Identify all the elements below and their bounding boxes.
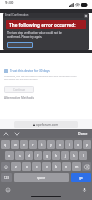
button[interactable]: f bbox=[34, 151, 42, 160]
button[interactable]: Go bbox=[71, 173, 91, 182]
staticText: h bbox=[55, 153, 58, 158]
button[interactable]: opeforum.com bbox=[14, 121, 78, 128]
staticText: d bbox=[28, 153, 31, 158]
staticText: q bbox=[4, 142, 7, 147]
staticText: opeforum.com bbox=[36, 123, 59, 127]
button[interactable]: s bbox=[15, 151, 24, 160]
staticText: p bbox=[86, 142, 89, 147]
staticText: v bbox=[46, 164, 48, 169]
button[interactable]: a bbox=[5, 151, 14, 160]
button[interactable]: w bbox=[11, 140, 19, 149]
button[interactable]: n bbox=[62, 162, 71, 171]
button[interactable]: t bbox=[38, 140, 46, 149]
staticText: Done bbox=[78, 131, 88, 136]
staticText: u bbox=[59, 142, 62, 147]
staticText: r bbox=[32, 142, 34, 147]
staticText: space bbox=[37, 176, 46, 180]
staticText: m bbox=[75, 164, 79, 169]
button[interactable]: Backspace bbox=[82, 162, 91, 171]
button[interactable]: l bbox=[79, 151, 87, 160]
staticText: l bbox=[83, 153, 84, 158]
button[interactable]: u bbox=[56, 140, 64, 149]
staticText: a bbox=[8, 153, 11, 158]
button[interactable]: Next field bbox=[14, 131, 20, 137]
staticText: b bbox=[55, 164, 58, 169]
button[interactable]: g bbox=[43, 151, 51, 160]
button[interactable]: Continue bbox=[4, 86, 34, 93]
button[interactable]: Previous field bbox=[3, 131, 9, 137]
staticText: 9:30 bbox=[5, 0, 14, 6]
button[interactable]: k bbox=[70, 151, 78, 160]
staticText: s bbox=[19, 153, 21, 158]
staticText: this device for the next 30 days. bbox=[4, 78, 38, 81]
staticText: z bbox=[15, 164, 17, 169]
staticText: Continue bbox=[13, 88, 25, 92]
button[interactable]: d bbox=[25, 151, 33, 160]
button[interactable]: 123 bbox=[1, 173, 12, 182]
button[interactable]: Close bbox=[84, 14, 88, 18]
staticText: The following error occurred: bbox=[9, 22, 76, 28]
staticText: n bbox=[65, 164, 68, 169]
button[interactable]: j bbox=[61, 151, 69, 160]
staticText: Logging in as bbox=[4, 21, 21, 25]
staticText: Email Confirmation bbox=[5, 13, 29, 17]
button[interactable]: y bbox=[47, 140, 55, 149]
button[interactable] bbox=[7, 42, 33, 48]
button[interactable]: e bbox=[20, 140, 28, 149]
staticText: Trust this device for 30 days bbox=[10, 69, 50, 73]
button[interactable]: m bbox=[72, 162, 81, 171]
staticText: Two Step Verification Required bbox=[4, 11, 88, 19]
button[interactable]: Emoji bbox=[5, 187, 10, 192]
staticText: w bbox=[14, 142, 17, 147]
button[interactable]: Dictation bbox=[82, 187, 87, 192]
staticText: Alternative Methods bbox=[4, 96, 34, 100]
button[interactable]: b bbox=[52, 162, 61, 171]
button[interactable]: p bbox=[83, 140, 91, 149]
button[interactable]: o bbox=[74, 140, 82, 149]
button[interactable]: z bbox=[11, 162, 21, 171]
button[interactable]: Shift bbox=[1, 162, 10, 171]
button[interactable]: q bbox=[1, 140, 10, 149]
staticText: o bbox=[77, 142, 80, 147]
staticText: x bbox=[26, 164, 28, 169]
staticText: c bbox=[36, 164, 38, 169]
staticText: e bbox=[23, 142, 26, 147]
staticText: f bbox=[37, 153, 39, 158]
staticText: 123 bbox=[4, 176, 9, 180]
button[interactable]: space bbox=[14, 173, 69, 182]
staticText: t bbox=[41, 142, 43, 147]
button[interactable]: Done bbox=[78, 131, 88, 136]
staticText: go bbox=[79, 176, 83, 180]
staticText: confirmed. Please try again. bbox=[7, 35, 43, 39]
staticText: j bbox=[65, 153, 66, 158]
button[interactable]: v bbox=[42, 162, 51, 171]
staticText: The two step verification value could no… bbox=[7, 31, 62, 35]
button[interactable]: i bbox=[65, 140, 73, 149]
button[interactable]: c bbox=[32, 162, 41, 171]
staticText: i bbox=[69, 142, 70, 147]
button[interactable]: r bbox=[29, 140, 37, 149]
staticText: k bbox=[73, 153, 75, 158]
button[interactable]: x bbox=[22, 162, 31, 171]
button[interactable]: h bbox=[52, 151, 60, 160]
staticText: g bbox=[46, 153, 49, 158]
staticText: If selected, you will not need to comple… bbox=[4, 75, 77, 78]
staticText: y bbox=[50, 142, 52, 147]
